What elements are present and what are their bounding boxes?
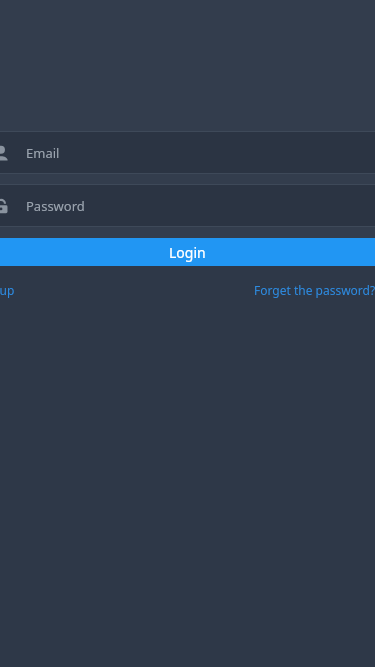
button[interactable]: Login	[0, 238, 375, 266]
staticText: Password	[26, 197, 85, 215]
button[interactable]: Email	[0, 132, 375, 173]
other: Password	[0, 197, 10, 215]
staticText: Forget the password?	[254, 282, 375, 298]
staticText: Email	[26, 144, 60, 162]
button[interactable]: Password	[0, 185, 375, 226]
button[interactable]: Forget the password?	[252, 282, 375, 298]
staticText: Login	[169, 243, 206, 262]
button[interactable]: Sign up	[0, 282, 17, 298]
other: Email	[0, 144, 10, 162]
staticText: Sign up	[0, 282, 15, 298]
